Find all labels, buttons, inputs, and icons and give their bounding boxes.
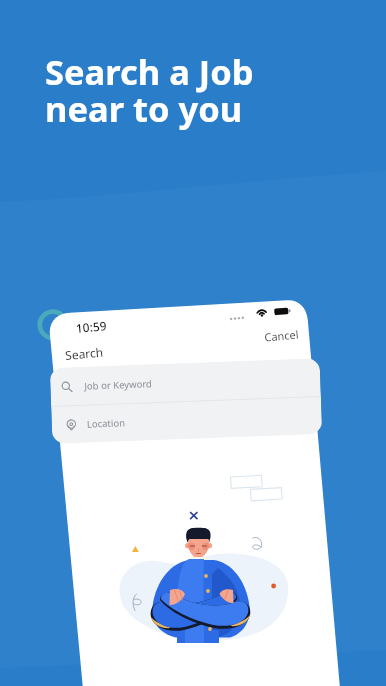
staticText: Search a Job near to you [45,48,254,132]
button[interactable]: Cancel [260,323,303,348]
staticText: 10:59 [75,317,107,336]
button[interactable]: Location [51,397,322,444]
staticText: Job or Keyword [84,377,153,393]
staticText: Cancel [264,326,300,344]
staticText: Search [64,344,104,363]
staticText: Location [86,416,126,431]
button[interactable]: Job or Keyword [50,358,321,406]
